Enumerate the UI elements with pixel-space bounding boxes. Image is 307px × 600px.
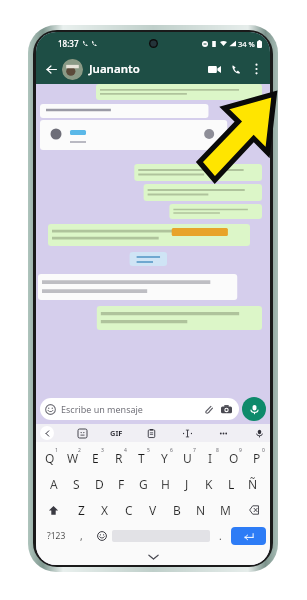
staticText: 6	[170, 447, 173, 454]
staticText: V	[149, 502, 157, 518]
staticText: Y	[161, 450, 168, 466]
staticText: X	[101, 502, 109, 518]
staticText: R	[115, 450, 123, 466]
button[interactable]: I	[199, 445, 222, 471]
button[interactable]: X	[93, 497, 117, 523]
staticText: 18:37	[58, 38, 79, 49]
button[interactable]: K	[198, 471, 220, 497]
button[interactable]: Z	[69, 497, 93, 523]
staticText: 1	[55, 447, 58, 454]
staticText: 8	[216, 447, 219, 454]
button[interactable]: Clipboard	[144, 426, 158, 440]
button[interactable]: F	[110, 471, 132, 497]
staticText: C	[125, 502, 133, 518]
button[interactable]: Collapse toolbar	[40, 426, 54, 440]
button[interactable]: Stickers	[75, 426, 89, 440]
staticText: 0	[262, 447, 265, 454]
button[interactable]: Q	[38, 445, 61, 471]
staticText: O	[229, 450, 239, 466]
staticText: 7	[193, 447, 196, 454]
button[interactable]: Backspace	[237, 497, 268, 523]
button[interactable]: A	[42, 471, 65, 497]
staticText: L	[228, 476, 235, 492]
staticText: J	[185, 476, 189, 492]
staticText: M	[220, 502, 231, 518]
button[interactable]: Text editing	[180, 426, 194, 440]
staticText: Escribe un mensaje	[61, 403, 143, 415]
staticText: Ñ	[248, 476, 258, 492]
button[interactable]: Juananto	[89, 61, 203, 77]
button[interactable]: Voice input	[252, 426, 266, 440]
staticText: P	[253, 450, 261, 466]
button[interactable]: T	[130, 445, 153, 471]
button[interactable]: Y	[153, 445, 176, 471]
staticText: A	[50, 476, 58, 492]
button[interactable]: GIF	[110, 428, 123, 438]
button[interactable]: W	[61, 445, 84, 471]
staticText: ,	[80, 529, 83, 543]
staticText: W	[67, 450, 79, 466]
staticText: 34 %	[238, 39, 255, 49]
button[interactable]: D	[88, 471, 110, 497]
staticText: D	[95, 476, 104, 492]
staticText: H	[161, 476, 170, 492]
button[interactable]: Enter	[231, 527, 266, 545]
button[interactable]: Ñ	[242, 471, 264, 497]
button[interactable]: Emoji	[91, 523, 112, 549]
staticText: F	[118, 476, 125, 492]
button[interactable]: U	[176, 445, 199, 471]
button[interactable]: C	[117, 497, 141, 523]
staticText: Z	[78, 502, 85, 518]
button[interactable]: J	[176, 471, 198, 497]
button[interactable]: .	[210, 523, 231, 549]
button[interactable]: L	[220, 471, 242, 497]
button[interactable]: B	[165, 497, 189, 523]
button[interactable]: H	[154, 471, 176, 497]
staticText: 5	[147, 447, 150, 454]
button[interactable]: ,	[72, 523, 91, 549]
staticText: Juananto	[89, 61, 140, 77]
button[interactable]: O	[222, 445, 245, 471]
staticText: Q	[45, 450, 55, 466]
staticText: 9	[239, 447, 242, 454]
button[interactable]: Shift	[38, 497, 69, 523]
button[interactable]: Profile photo	[62, 59, 83, 80]
staticText: G	[139, 476, 148, 492]
staticText: T	[138, 450, 145, 466]
button[interactable]: G	[132, 471, 154, 497]
staticText: .	[219, 529, 222, 543]
button[interactable]: Escribe un mensaje	[40, 398, 239, 420]
staticText: B	[173, 502, 181, 518]
staticText: N	[196, 502, 206, 518]
button[interactable]: P	[245, 445, 268, 471]
staticText: ?123	[47, 530, 66, 542]
staticText: 4	[124, 447, 127, 454]
button[interactable]: R	[107, 445, 130, 471]
button[interactable]: S	[65, 471, 88, 497]
button[interactable]: V	[141, 497, 165, 523]
button[interactable]: More	[216, 426, 230, 440]
button[interactable]: M	[213, 497, 237, 523]
button[interactable]: E	[84, 445, 107, 471]
button[interactable]: Video call	[203, 58, 225, 80]
button[interactable]: Record voice message	[242, 397, 266, 421]
staticText: 2	[78, 447, 81, 454]
staticText: 3	[101, 447, 104, 454]
staticText: I	[208, 450, 213, 466]
button[interactable]: More options	[247, 60, 265, 78]
button[interactable]: N	[189, 497, 213, 523]
staticText: S	[73, 476, 80, 492]
staticText: E	[92, 450, 99, 466]
button[interactable]: Back	[41, 59, 61, 79]
staticText: K	[205, 476, 213, 492]
staticText: GIF	[110, 428, 123, 438]
button[interactable]: Voice call	[225, 58, 247, 80]
staticText: U	[183, 450, 192, 466]
button[interactable]: ?123	[40, 523, 72, 549]
